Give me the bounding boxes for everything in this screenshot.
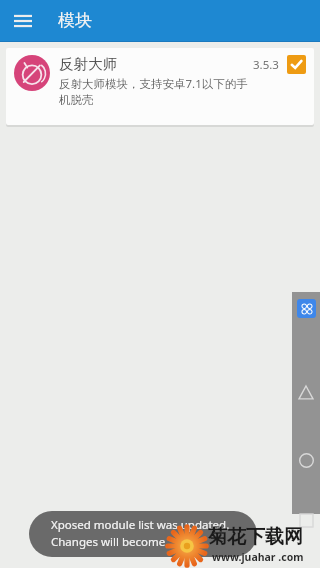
button[interactable]: Home	[293, 447, 319, 473]
button[interactable]: Back	[293, 380, 319, 406]
button[interactable]: 反射大师	[6, 48, 314, 125]
staticText: 反射大师模块，支持安卓7.1以下的手 机脱壳	[59, 76, 248, 107]
staticText: 反射大师	[59, 55, 117, 73]
staticText: 3.5.3	[253, 57, 279, 73]
staticText: Xposed module list was updated. Changes …	[51, 517, 230, 549]
staticText: 模块	[58, 10, 92, 31]
button[interactable]: Module enabled	[287, 55, 306, 74]
staticText: www.juahar .com	[212, 550, 304, 564]
button[interactable]: Apps	[297, 299, 316, 318]
staticText: 菊花下载网	[208, 525, 303, 549]
button[interactable]: Open navigation drawer	[6, 4, 40, 38]
